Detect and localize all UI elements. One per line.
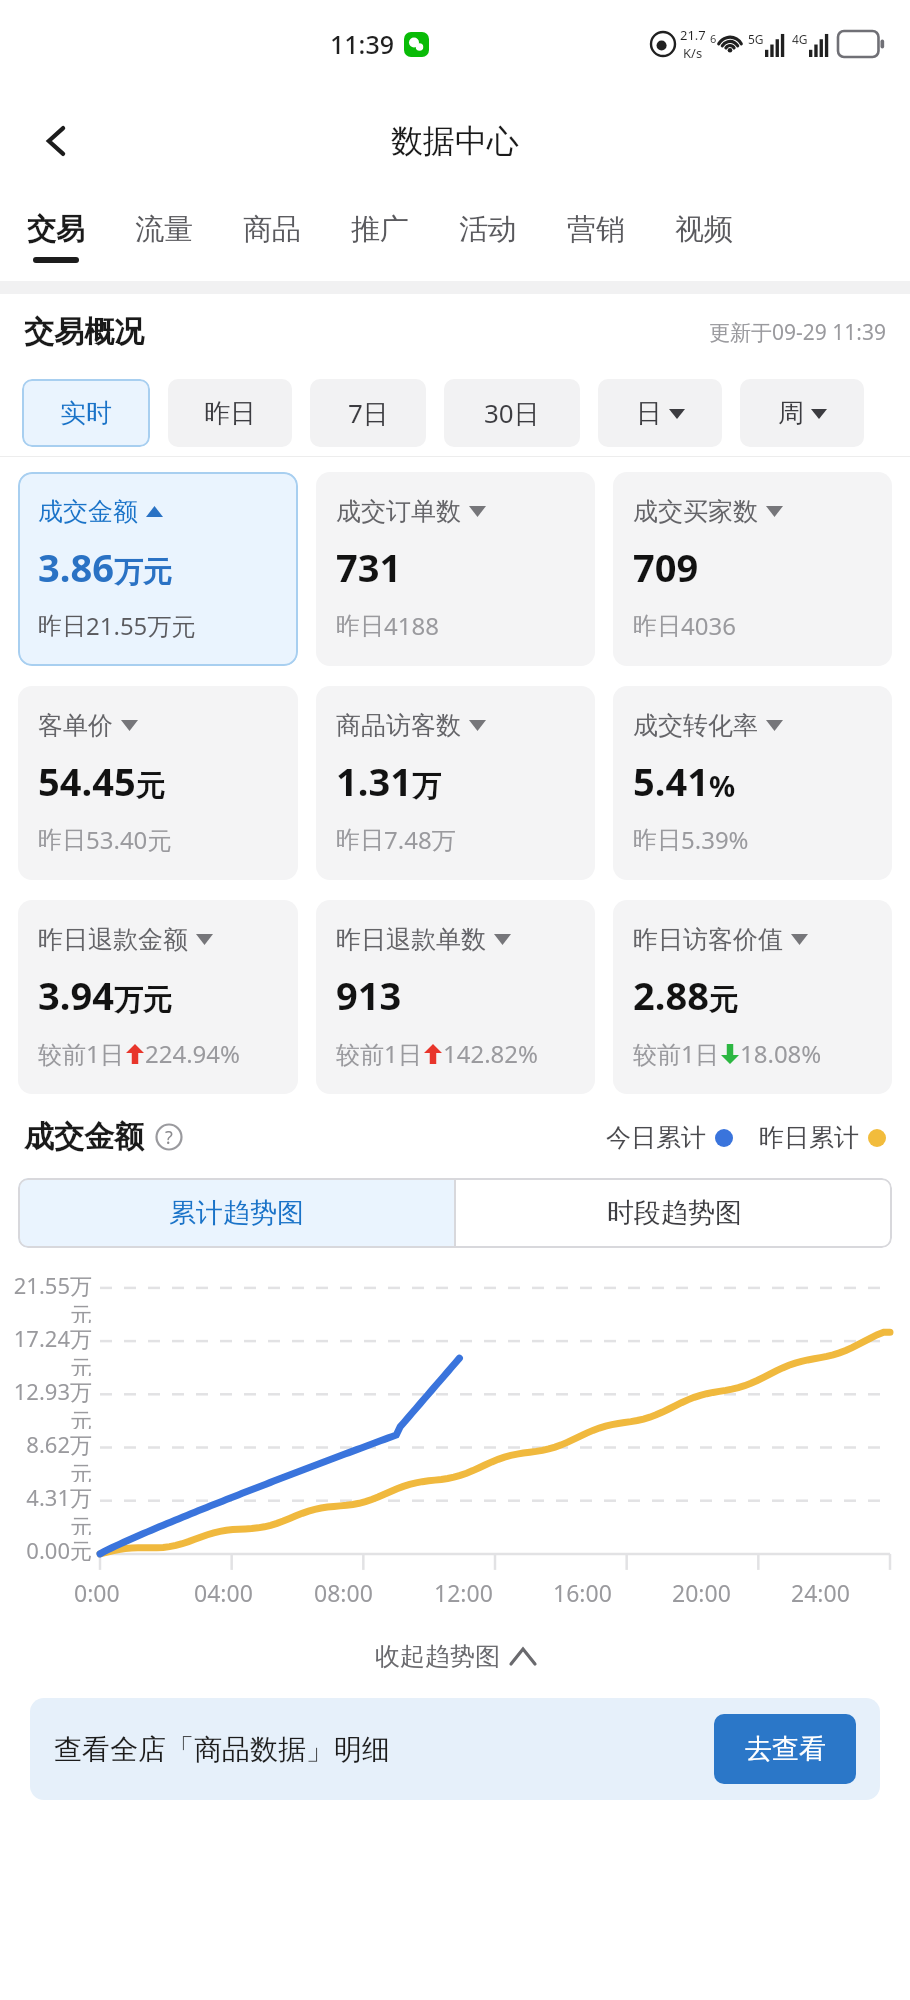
button[interactable]: 成交订单数 (316, 472, 595, 666)
button[interactable]: 营销 (560, 193, 631, 281)
staticText: 商品 (243, 211, 301, 248)
staticText: 昨日 (38, 611, 86, 641)
staticText: 昨日 (38, 825, 86, 855)
staticText: 4G (792, 31, 808, 47)
button[interactable]: 去查看 (714, 1714, 856, 1784)
staticText: K/s (683, 44, 703, 62)
button[interactable]: 客单价 (18, 686, 298, 880)
staticText: 142.82% (443, 1037, 539, 1070)
staticText: 昨日累计 (759, 1122, 859, 1153)
staticText: 7日 (348, 395, 389, 431)
staticText: 昨日访客价值 (633, 924, 783, 955)
staticText: 视频 (675, 211, 733, 248)
staticText: 推广 (351, 211, 409, 248)
button[interactable]: 周 (740, 379, 864, 447)
button[interactable]: 商品访客数 (316, 686, 595, 880)
staticText: 08:00 (314, 1577, 373, 1608)
staticText: 04:00 (194, 1577, 253, 1608)
staticText: 53.40元 (86, 823, 172, 856)
button[interactable]: 时段趋势图 (456, 1178, 892, 1248)
staticText: 709 (633, 541, 699, 593)
staticText: 交易概况 (24, 313, 144, 351)
button[interactable]: 30日 (444, 379, 580, 447)
staticText: 较前1日 (38, 1037, 124, 1070)
staticText: 4.31万元 (8, 1482, 92, 1535)
staticText: 营销 (567, 211, 625, 248)
staticText: 数据中心 (391, 121, 519, 161)
staticText: 11:39 (330, 27, 395, 61)
staticText: 元 (136, 768, 165, 805)
staticText: 实时 (60, 397, 112, 430)
staticText: 21.7 (680, 26, 706, 44)
staticText: 较前1日 (633, 1037, 719, 1070)
button[interactable]: 昨日 (168, 379, 292, 447)
staticText: 昨日退款单数 (336, 924, 486, 955)
staticText: 商品访客数 (336, 710, 461, 741)
staticText: 5.41 (633, 755, 709, 807)
staticText: 2.88 (633, 969, 709, 1021)
staticText: 成交转化率 (633, 710, 758, 741)
staticText: 昨日 (336, 611, 384, 641)
staticText: 昨日 (336, 825, 384, 855)
staticText: 较前1日 (336, 1037, 422, 1070)
staticText: 17.24万元 (8, 1323, 92, 1376)
button[interactable]: 日 (598, 379, 722, 447)
staticText: 周 (778, 397, 804, 430)
staticText: 5.39% (681, 823, 749, 856)
button[interactable]: 收起趋势图 (359, 1635, 551, 1678)
staticText: 20:00 (672, 1577, 731, 1608)
button[interactable]: 查看全店「商品数据」明细 (30, 1698, 880, 1800)
staticText: 5G (748, 31, 764, 47)
button[interactable]: 成交买家数 (613, 472, 892, 666)
staticText: ? (165, 1125, 173, 1150)
staticText: 更新于09-29 11:39 (709, 318, 886, 347)
button[interactable]: 帮助 (154, 1122, 184, 1152)
button[interactable]: 昨日访客价值 (613, 900, 892, 1094)
staticText: 昨日 (633, 611, 681, 641)
button[interactable]: Back (26, 110, 88, 172)
staticText: 16:00 (553, 1577, 612, 1608)
staticText: 12.93万元 (8, 1376, 92, 1429)
staticText: 万元 (114, 554, 172, 591)
staticText: 昨日 (633, 825, 681, 855)
staticText: 30日 (484, 395, 540, 431)
staticText: 成交买家数 (633, 496, 758, 527)
staticText: 日 (636, 397, 662, 430)
staticText: 交易 (27, 211, 85, 248)
staticText: 731 (336, 541, 402, 593)
staticText: 4188 (384, 609, 439, 642)
staticText: 3.94 (38, 969, 114, 1021)
staticText: % (709, 766, 736, 805)
staticText: 昨日 (204, 397, 256, 430)
staticText: 去查看 (745, 1732, 826, 1766)
staticText: 活动 (459, 211, 517, 248)
button[interactable]: 交易 (20, 193, 91, 281)
button[interactable]: 成交金额 (18, 472, 298, 666)
staticText: 收起趋势图 (375, 1641, 500, 1672)
button[interactable]: 累计趋势图 (18, 1178, 454, 1248)
staticText: 224.94% (145, 1037, 241, 1070)
staticText: 12:00 (434, 1577, 493, 1608)
button[interactable]: 活动 (452, 193, 523, 281)
button[interactable]: 商品 (236, 193, 307, 281)
button[interactable]: 成交转化率 (613, 686, 892, 880)
button[interactable]: 流量 (128, 193, 199, 281)
staticText: 流量 (135, 211, 193, 248)
staticText: 成交金额 (24, 1118, 144, 1156)
button[interactable]: 昨日退款单数 (316, 900, 595, 1094)
staticText: 万 (412, 768, 441, 805)
staticText: 24:00 (791, 1577, 850, 1608)
staticText: 今日累计 (606, 1122, 706, 1153)
staticText: 6 (710, 31, 717, 46)
staticText: 时段趋势图 (607, 1196, 742, 1230)
staticText: 54.45 (38, 755, 136, 807)
staticText: 1.31 (336, 755, 412, 807)
button[interactable]: 推广 (344, 193, 415, 281)
staticText: 0.00元 (8, 1535, 92, 1565)
button[interactable]: 视频 (668, 193, 739, 281)
button[interactable]: 7日 (310, 379, 426, 447)
staticText: 万元 (114, 982, 172, 1019)
button[interactable]: 昨日退款金额 (18, 900, 298, 1094)
button[interactable]: 实时 (22, 379, 150, 447)
staticText: 客单价 (38, 710, 113, 741)
